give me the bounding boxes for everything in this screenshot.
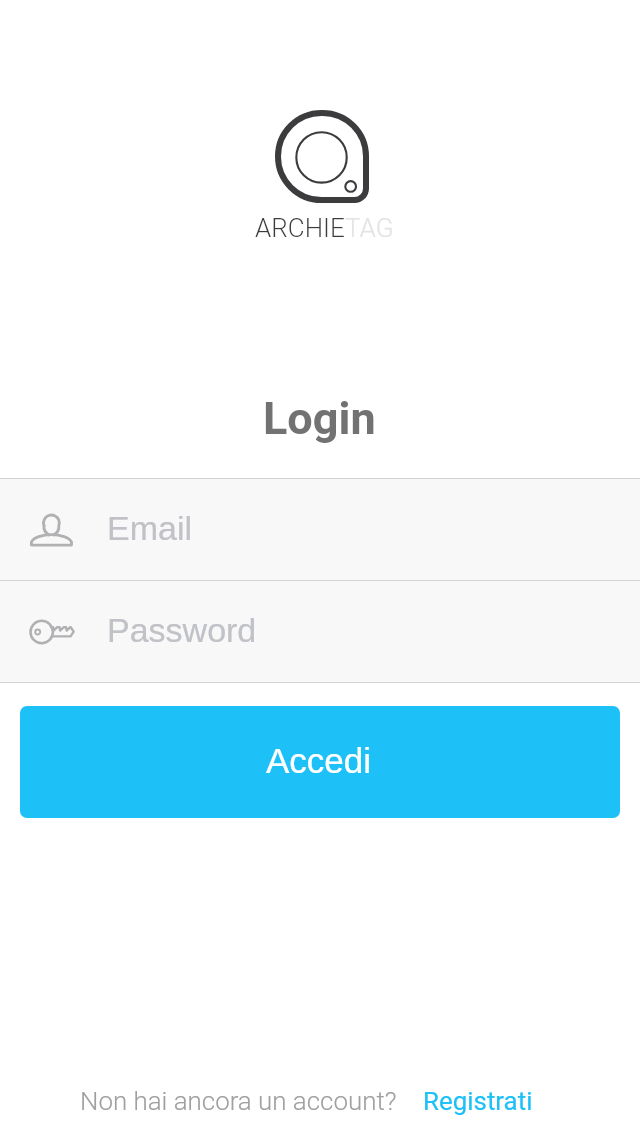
- button[interactable]: Password: [0, 581, 640, 682]
- staticText: Accedi: [266, 741, 372, 780]
- staticText: Non hai ancora un account?: [80, 1086, 397, 1116]
- staticText: Registrati: [423, 1086, 533, 1116]
- staticText: ARCHIE: [255, 213, 345, 243]
- staticText: Password: [107, 611, 257, 649]
- staticText: Login: [263, 392, 376, 445]
- button[interactable]: Email: [0, 479, 640, 580]
- button[interactable]: Registrati: [423, 1086, 533, 1116]
- staticText: TAG: [345, 213, 394, 243]
- staticText: Email: [107, 509, 193, 547]
- other: Password: [28, 612, 76, 652]
- button[interactable]: Accedi: [20, 706, 620, 818]
- other: Email: [28, 510, 76, 550]
